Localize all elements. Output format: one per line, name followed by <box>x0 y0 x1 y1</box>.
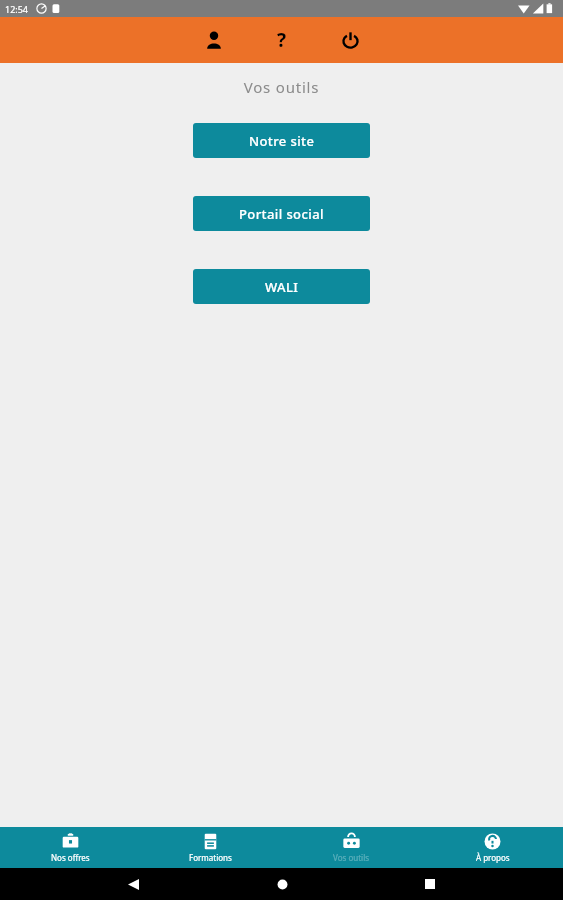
staticText: Portail social <box>239 205 324 223</box>
button[interactable]: WALI <box>193 269 370 304</box>
staticText: WALI <box>265 278 299 296</box>
staticText: Notre site <box>249 132 315 150</box>
staticText: À propos <box>476 852 510 863</box>
button[interactable]: Aide <box>259 17 305 63</box>
staticText: ? <box>277 27 287 53</box>
button[interactable]: Vos outils <box>281 827 422 868</box>
staticText: 12:54 <box>5 3 29 15</box>
button[interactable]: Déconnexion <box>327 17 373 63</box>
staticText: Vos outils <box>333 852 370 863</box>
staticText: Vos outils <box>0 77 563 97</box>
staticText: Nos offres <box>51 852 90 863</box>
button[interactable]: Portail social <box>193 196 370 231</box>
button[interactable]: Compte <box>191 17 237 63</box>
staticText: Formations <box>189 852 232 863</box>
button[interactable]: Retour <box>117 868 149 900</box>
button[interactable]: Nos offres <box>0 827 140 868</box>
button[interactable]: Applications récentes <box>414 868 446 900</box>
button[interactable]: Accueil <box>266 868 298 900</box>
button[interactable]: Notre site <box>193 123 370 158</box>
button[interactable]: Formations <box>140 827 281 868</box>
button[interactable]: À propos <box>422 827 563 868</box>
